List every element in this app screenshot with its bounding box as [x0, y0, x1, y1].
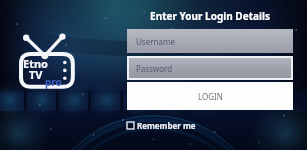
staticText: Password	[136, 63, 173, 74]
staticText: Etno	[23, 56, 48, 71]
other: Etno TV Pro logo	[12, 34, 84, 92]
button[interactable]: Password	[127, 56, 293, 80]
staticText: pro	[45, 75, 62, 89]
button[interactable]: Username	[127, 29, 293, 53]
staticText: TV	[29, 67, 43, 82]
staticText: LOGIN	[198, 91, 223, 102]
staticText: Remember me	[137, 120, 196, 131]
button[interactable]: Remember me	[127, 118, 199, 132]
staticText: Enter Your Login Details	[127, 9, 293, 23]
staticText: Username	[136, 36, 175, 47]
button[interactable]: LOGIN	[127, 82, 293, 110]
